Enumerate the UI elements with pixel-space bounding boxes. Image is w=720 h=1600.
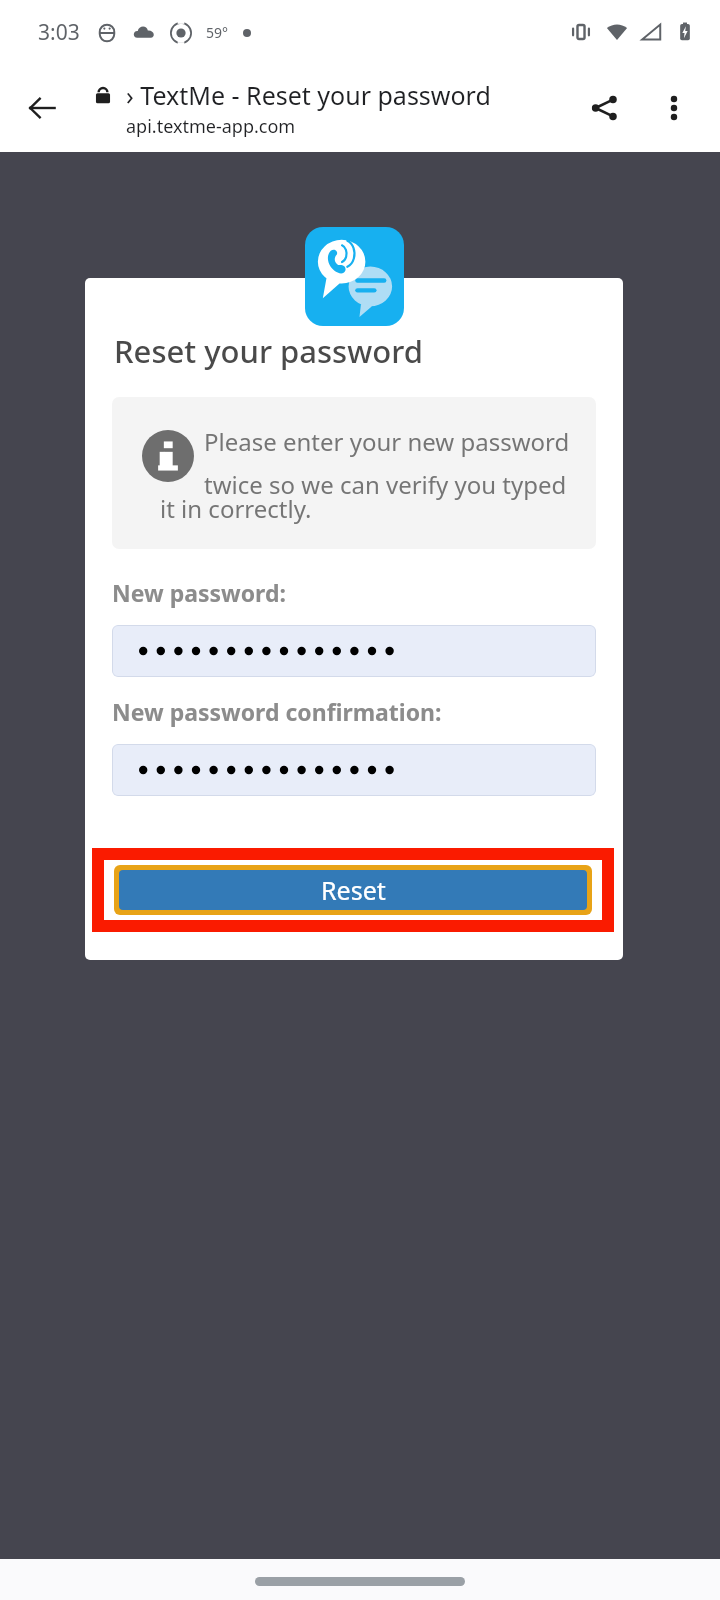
button[interactable] [112, 625, 596, 677]
staticText: 3:03 [38, 18, 80, 47]
button[interactable]: More options [646, 80, 702, 136]
staticText: twice so we can verify you typed [204, 468, 567, 501]
button[interactable]: Share [576, 80, 632, 136]
button[interactable]: Reset [114, 865, 592, 915]
staticText: New password confirmation: [112, 696, 442, 727]
staticText: Please enter your new password [204, 425, 570, 458]
staticText: 59° [206, 23, 229, 42]
staticText: Reset your password [114, 330, 423, 372]
button[interactable]: Back [14, 80, 70, 136]
staticText: it in correctly. [160, 492, 312, 525]
staticText: New password: [112, 577, 286, 608]
staticText: › TextMe - Reset your password [126, 78, 491, 112]
button[interactable] [112, 744, 596, 796]
button[interactable]: › TextMe - Reset your password [92, 78, 590, 139]
staticText: Reset [321, 873, 386, 907]
staticText: api.textme-app.com [126, 114, 296, 139]
